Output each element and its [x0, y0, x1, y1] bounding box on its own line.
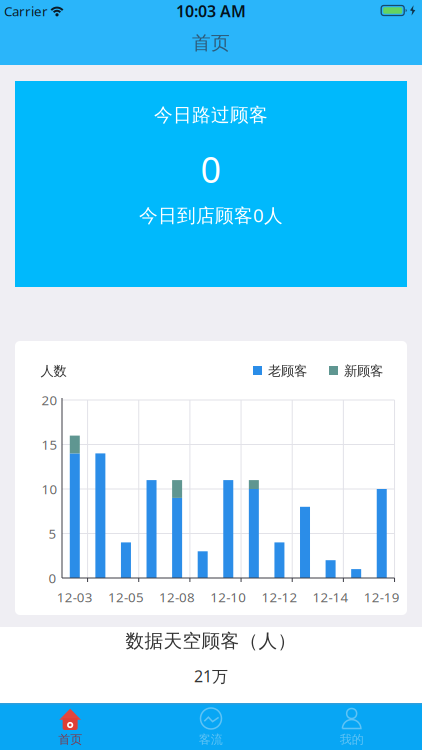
staticText: 客流 [199, 732, 223, 747]
staticText: 12-12 [261, 588, 297, 606]
staticText: 0 [200, 145, 221, 193]
staticText: 今日到店顾客0人 [139, 203, 283, 227]
staticText: 人数 [40, 363, 66, 379]
staticText: 数据天空顾客（人） [125, 629, 296, 652]
button[interactable]: 我的 [281, 703, 422, 750]
staticText: 12-03 [57, 588, 93, 606]
staticText: 今日路过顾客 [154, 103, 268, 126]
staticText: 10 [41, 480, 57, 498]
staticText: 首页 [192, 31, 230, 54]
staticText: 12-19 [364, 588, 400, 606]
staticText: 12-14 [313, 588, 349, 606]
staticText: 21万 [194, 665, 228, 687]
staticText: 10:03 AM [176, 0, 246, 22]
staticText: 12-08 [159, 588, 195, 606]
staticText: 20 [41, 391, 57, 409]
staticText: 新顾客 [344, 363, 383, 379]
staticText: 12-10 [210, 588, 246, 606]
staticText: 15 [41, 436, 57, 453]
staticText: 首页 [58, 732, 82, 747]
button[interactable]: 首页 [0, 703, 141, 750]
staticText: 5 [48, 525, 56, 542]
staticText: 0 [48, 569, 56, 587]
staticText: 我的 [340, 732, 364, 747]
staticText: 12-05 [108, 588, 144, 606]
button[interactable]: 客流 [141, 703, 281, 750]
staticText: Carrier [4, 2, 48, 20]
staticText: 老顾客 [268, 363, 307, 379]
